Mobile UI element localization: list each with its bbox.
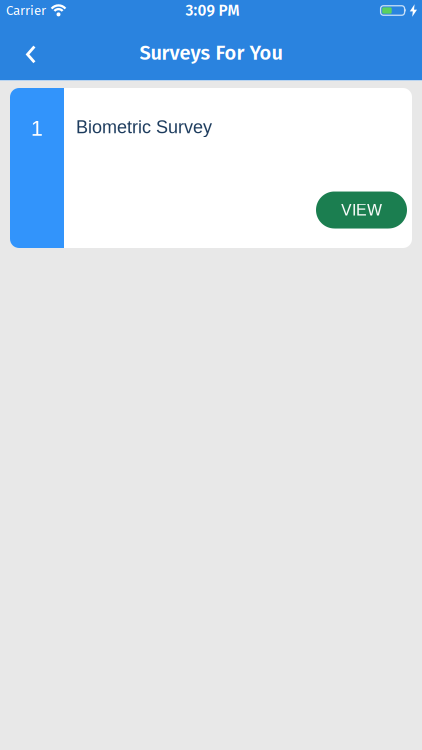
staticText: 3:09 PM [185, 1, 239, 20]
staticText: Surveys For You [139, 41, 282, 65]
button[interactable]: Back [0, 23, 51, 83]
staticText: 1 [31, 116, 43, 140]
staticText: Biometric Survey [76, 117, 212, 137]
button[interactable]: VIEW [316, 191, 407, 228]
staticText: Carrier [6, 2, 46, 18]
staticText: VIEW [341, 201, 382, 219]
